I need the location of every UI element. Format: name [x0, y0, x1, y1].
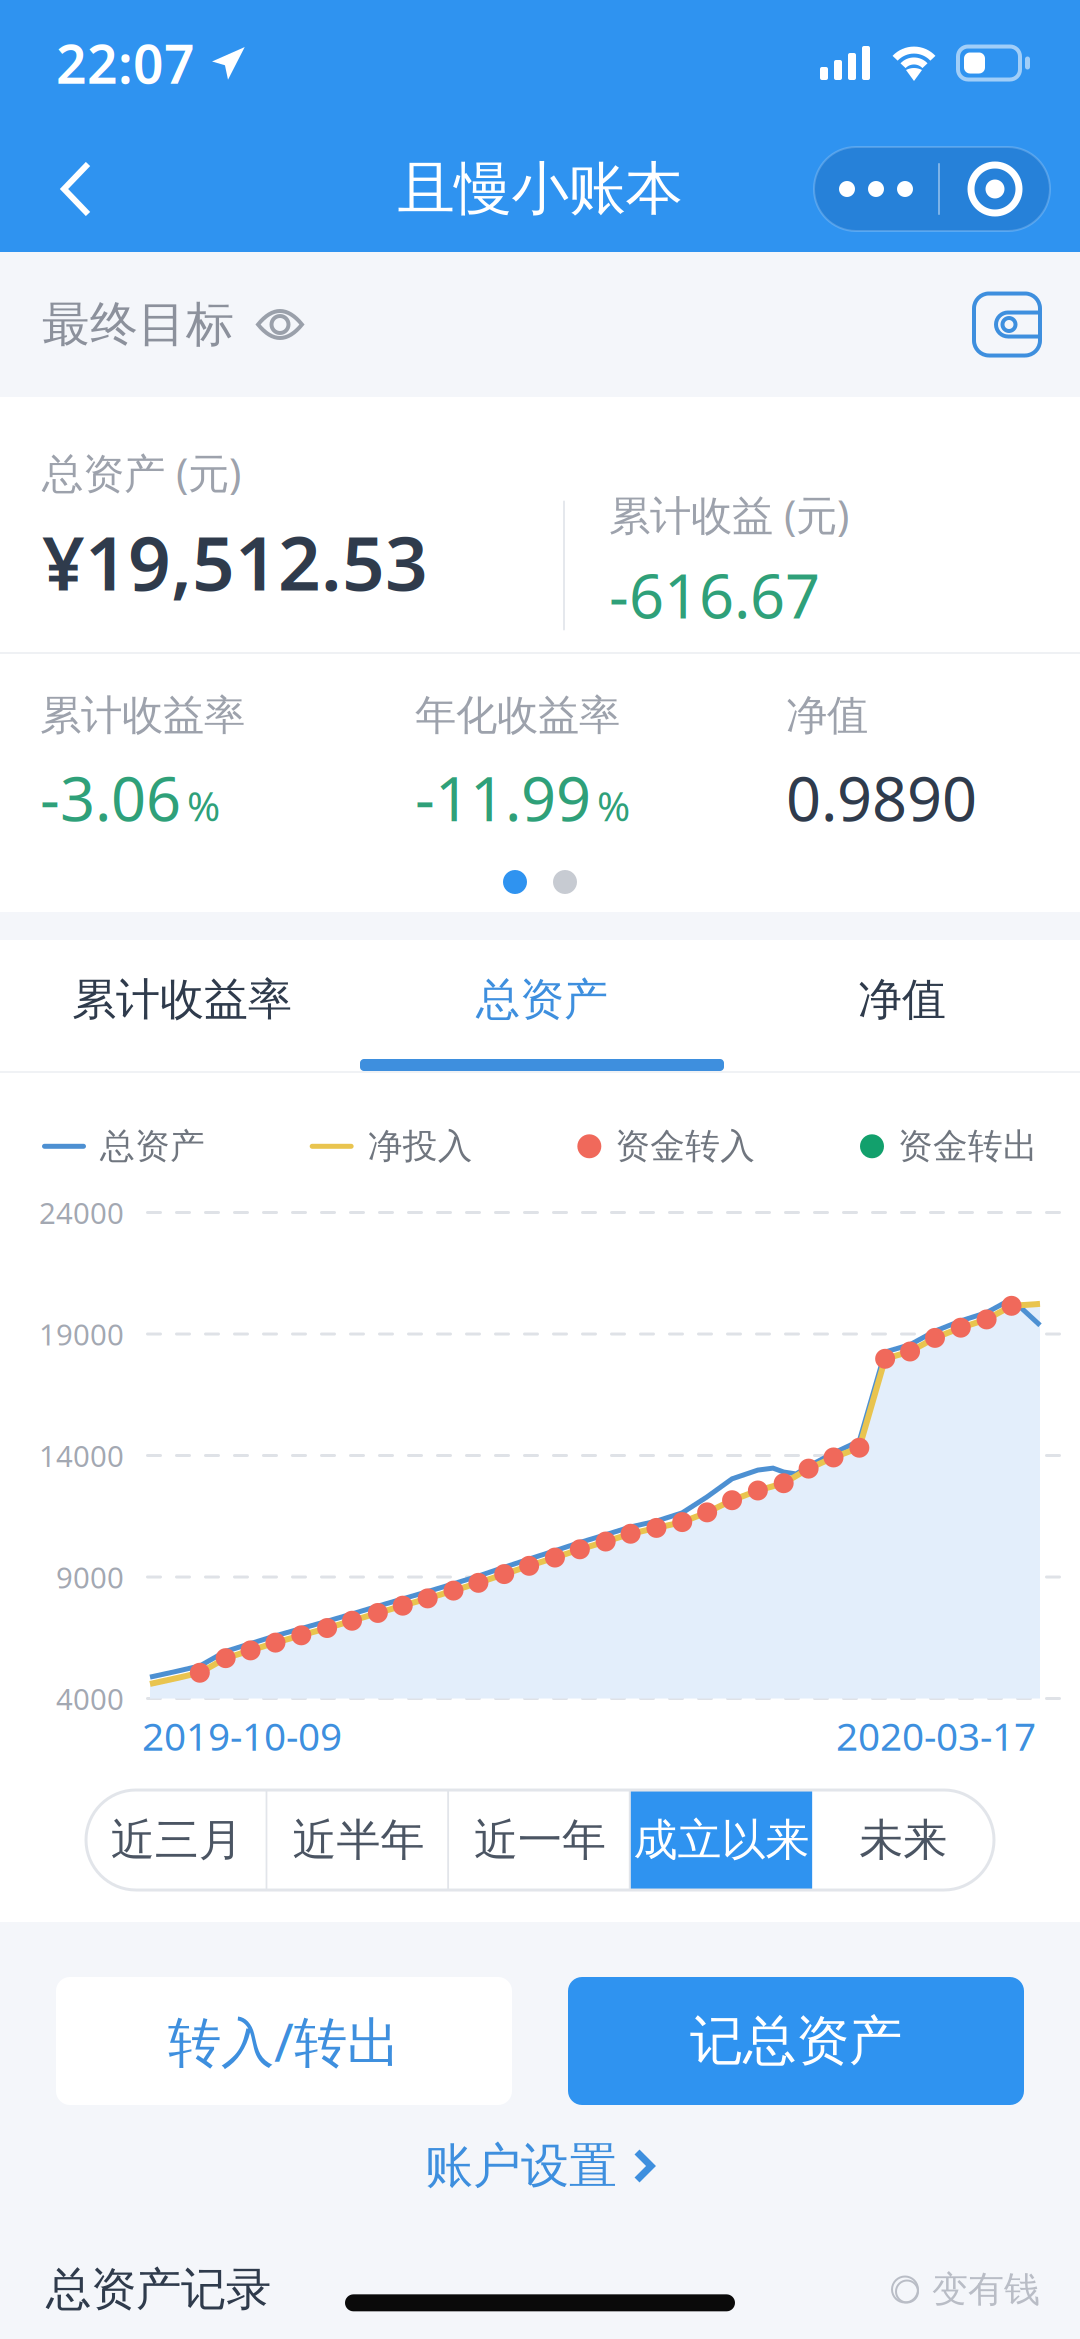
staticText: 0.9890	[786, 757, 977, 838]
staticText: 净投入	[368, 1125, 473, 1168]
staticText: 总资产 (元)	[42, 445, 241, 500]
staticText: 记总资产	[690, 2008, 902, 2074]
staticText: 成立以来	[634, 1813, 810, 1867]
button[interactable]: 净值	[720, 940, 1080, 1071]
staticText: 近半年	[292, 1813, 424, 1867]
staticText: 资金转入	[615, 1125, 755, 1168]
staticText: 资金转出	[898, 1125, 1038, 1168]
staticText: 24000	[39, 1193, 124, 1232]
staticText: 9000	[56, 1557, 124, 1596]
button[interactable]: 累计收益率	[0, 940, 360, 1071]
staticText: 未来	[859, 1813, 947, 1867]
staticText: 总资产	[476, 972, 608, 1026]
staticText: 且慢小账本	[397, 154, 682, 224]
button[interactable]: 近一年	[449, 1790, 631, 1890]
staticText: 累计收益 (元)	[609, 487, 849, 542]
staticText: 2020-03-17	[836, 1710, 1036, 1761]
staticText: ¥19,512.53	[42, 512, 428, 611]
staticText: 最终目标	[42, 295, 234, 354]
button[interactable]: 近半年	[268, 1790, 449, 1890]
button[interactable]: More options	[814, 147, 938, 231]
staticText: %	[597, 779, 630, 832]
button[interactable]: Close mini program	[940, 147, 1050, 231]
button[interactable]: 记总资产	[568, 1977, 1024, 2105]
button[interactable]: 转入/转出	[56, 1977, 512, 2105]
staticText: 近三月	[111, 1813, 243, 1867]
staticText: 2019-10-09	[142, 1710, 342, 1761]
staticText: 年化收益率	[415, 690, 620, 741]
button[interactable]: Back	[24, 128, 128, 250]
staticText: 总资产记录	[46, 2262, 271, 2317]
staticText: 19000	[39, 1314, 124, 1353]
staticText: -616.67	[609, 554, 820, 635]
staticText: 14000	[39, 1436, 124, 1475]
button[interactable]: 未来	[812, 1790, 994, 1890]
staticText: 变有钱	[932, 2267, 1040, 2312]
button[interactable]: 成立以来	[631, 1790, 812, 1890]
staticText: 净值	[786, 690, 868, 741]
staticText: 账户设置	[425, 2136, 617, 2195]
button[interactable]: 近三月	[86, 1790, 268, 1890]
staticText: 累计收益率	[40, 690, 245, 741]
staticText: 净值	[858, 972, 946, 1026]
staticText: 总资产	[100, 1125, 205, 1168]
button[interactable]: Wallet	[974, 293, 1040, 355]
staticText: -3.06	[40, 757, 181, 838]
staticText: 近一年	[474, 1813, 606, 1867]
button[interactable]: 总资产	[360, 940, 720, 1071]
staticText: 22:07	[56, 28, 195, 98]
staticText: 4000	[56, 1679, 124, 1718]
button[interactable]: 账户设置	[425, 2105, 655, 2227]
staticText: -11.99	[415, 757, 591, 838]
staticText: %	[187, 779, 220, 832]
staticText: 转入/转出	[168, 2006, 400, 2076]
staticText: 累计收益率	[72, 972, 292, 1026]
